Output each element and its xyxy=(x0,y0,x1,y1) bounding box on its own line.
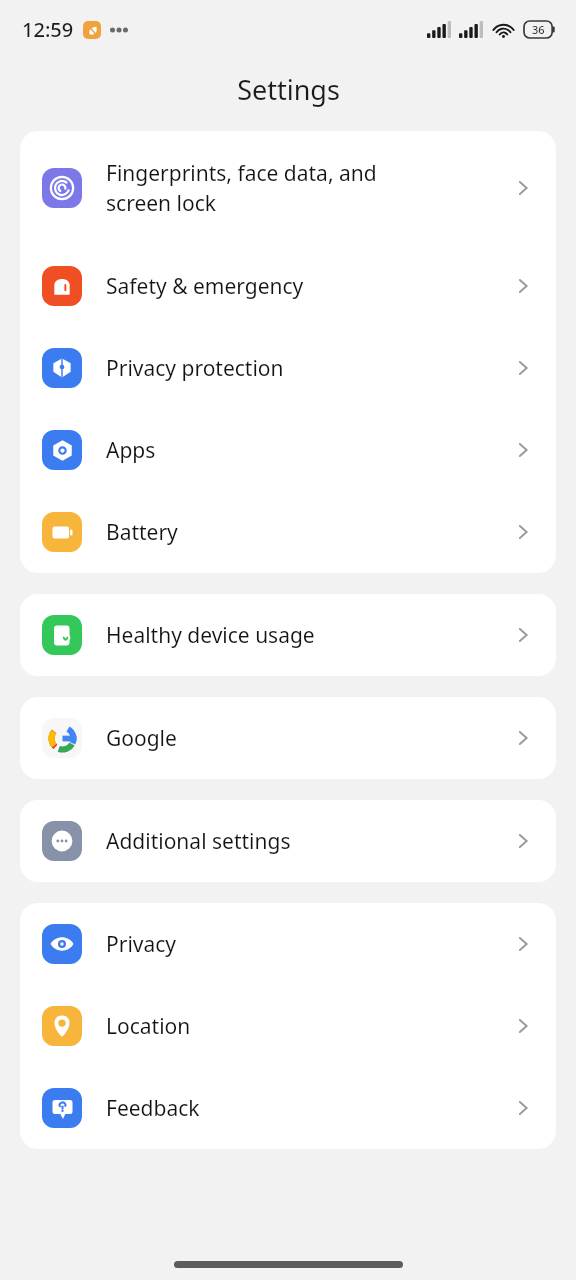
button[interactable]: Additional settings xyxy=(20,800,556,882)
staticText: 12:59 xyxy=(22,16,74,43)
staticText: Feedback xyxy=(106,1094,510,1123)
staticText: Privacy protection xyxy=(106,354,510,383)
button[interactable]: Privacy protection xyxy=(20,327,556,409)
button[interactable]: Fingerprints, face data, and screen lock xyxy=(20,131,556,245)
staticText: Safety & emergency xyxy=(106,272,510,301)
button[interactable]: Privacy xyxy=(20,903,556,985)
staticText: Settings xyxy=(237,71,340,108)
staticText: Battery xyxy=(106,518,510,547)
staticText: Privacy xyxy=(106,930,510,959)
staticText: Apps xyxy=(106,436,510,465)
staticText: Location xyxy=(106,1012,510,1041)
button[interactable]: Battery xyxy=(20,491,556,573)
button[interactable]: Safety & emergency xyxy=(20,245,556,327)
button[interactable]: Location xyxy=(20,985,556,1067)
staticText: Additional settings xyxy=(106,827,510,856)
staticText: Fingerprints, face data, and screen lock xyxy=(106,159,510,218)
button[interactable]: Healthy device usage xyxy=(20,594,556,676)
staticText: Healthy device usage xyxy=(106,621,510,650)
button[interactable]: Feedback xyxy=(20,1067,556,1149)
staticText: 36 xyxy=(532,22,545,37)
button[interactable]: Apps xyxy=(20,409,556,491)
button[interactable]: Google xyxy=(20,697,556,779)
staticText: Google xyxy=(106,724,510,753)
